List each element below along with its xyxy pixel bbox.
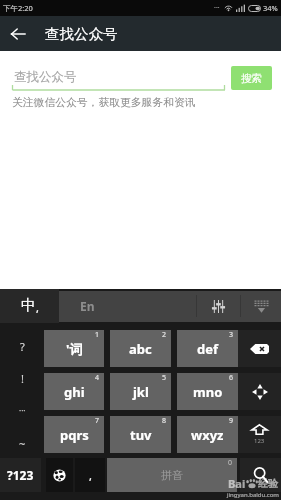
staticText: 拼音: [161, 468, 183, 482]
staticText: 下午2:20: [3, 3, 33, 13]
other: Move cursor: [252, 384, 268, 400]
staticText: ~: [19, 436, 26, 451]
staticText: 查找公众号: [14, 69, 77, 85]
button[interactable]: abc: [110, 330, 171, 367]
button[interactable]: def: [177, 330, 238, 367]
button[interactable]: Search: [240, 458, 281, 492]
staticText: 关注微信公众号，获取更多服务和资讯: [12, 96, 196, 110]
staticText: wxyz: [191, 426, 224, 444]
staticText: ···: [214, 3, 220, 13]
staticText: ···: [19, 405, 26, 416]
staticText: 2: [162, 330, 167, 340]
button[interactable]: ?123: [0, 458, 41, 492]
staticText: pqrs: [60, 426, 89, 444]
button[interactable]: 中: [0, 289, 59, 323]
staticText: 9: [229, 416, 234, 426]
button[interactable]: '词: [44, 330, 104, 367]
staticText: 7: [95, 416, 100, 426]
staticText: tuv: [130, 426, 152, 444]
staticText: 3: [229, 330, 234, 340]
staticText: 5: [162, 373, 167, 383]
staticText: Bai: [228, 476, 246, 491]
button[interactable]: Change language: [46, 458, 73, 492]
staticText: '词: [66, 340, 83, 358]
staticText: 6: [229, 373, 234, 383]
button[interactable]: 搜索: [231, 66, 272, 90]
button[interactable]: ?: [0, 330, 44, 362]
staticText: 搜索: [241, 72, 262, 85]
staticText: jingyan.baidu.com: [227, 491, 279, 499]
button[interactable]: pqrs: [44, 416, 104, 453]
staticText: ?: [20, 339, 25, 354]
staticText: 查找公众号: [45, 25, 118, 43]
staticText: 中: [21, 296, 36, 315]
button[interactable]: Hide keyboard: [241, 289, 281, 323]
staticText: jkl: [133, 383, 149, 401]
other: Shift: [251, 424, 268, 445]
staticText: En: [80, 298, 95, 314]
staticText: ,: [36, 300, 39, 315]
staticText: 经验: [258, 477, 278, 490]
other: Backspace: [250, 344, 269, 354]
staticText: ghi: [64, 383, 85, 401]
button[interactable]: ,: [75, 458, 105, 492]
staticText: 0: [228, 458, 233, 468]
button[interactable]: 查找公众号: [12, 68, 225, 91]
button[interactable]: ghi: [44, 373, 104, 410]
staticText: 34%: [263, 3, 278, 13]
staticText: def: [197, 340, 219, 358]
button[interactable]: 拼音: [107, 458, 237, 492]
button[interactable]: Move cursor: [238, 373, 281, 410]
button[interactable]: tuv: [110, 416, 171, 453]
button[interactable]: Back: [0, 16, 36, 51]
staticText: 1: [95, 330, 100, 340]
staticText: abc: [129, 340, 152, 358]
staticText: 8: [162, 416, 167, 426]
button[interactable]: Keyboard settings: [197, 289, 240, 323]
button[interactable]: En: [59, 289, 196, 323]
button[interactable]: jkl: [110, 373, 171, 410]
button[interactable]: ~: [0, 427, 44, 460]
staticText: 123: [254, 437, 265, 445]
staticText: mno: [193, 383, 223, 401]
button[interactable]: mno: [177, 373, 238, 410]
button[interactable]: Shift: [238, 416, 281, 453]
button[interactable]: ···: [0, 394, 44, 427]
staticText: ?123: [7, 467, 34, 483]
staticText: 4: [95, 373, 100, 383]
staticText: ,: [89, 468, 92, 483]
button[interactable]: !: [0, 362, 44, 394]
button[interactable]: wxyz: [177, 416, 238, 453]
button[interactable]: Backspace: [238, 330, 281, 367]
staticText: !: [21, 371, 24, 386]
